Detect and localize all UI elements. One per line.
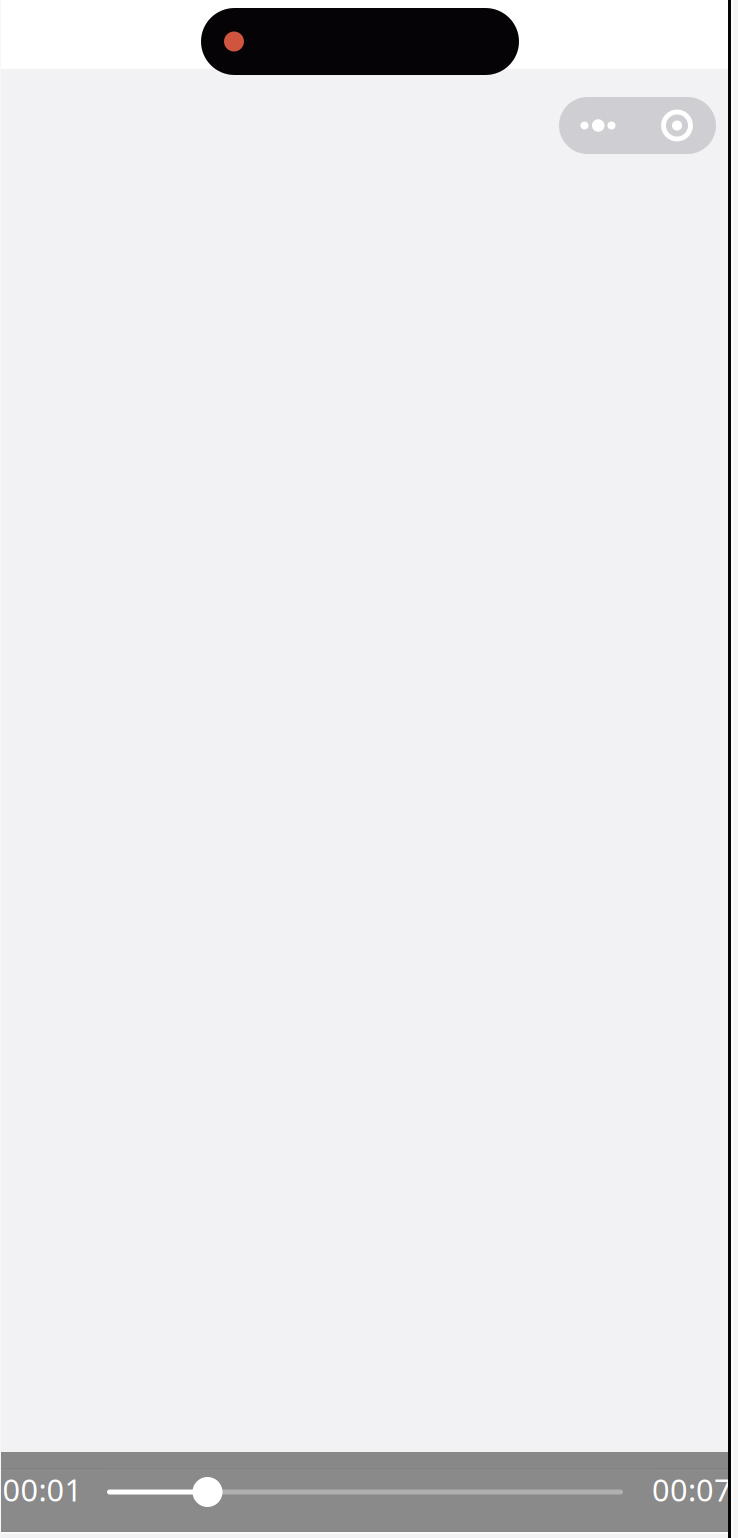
button[interactable]: Record <box>559 97 716 154</box>
button[interactable]: Scrubber <box>107 1467 653 1517</box>
staticText: 00:07 <box>652 1469 732 1510</box>
staticText: 00:01 <box>3 1469 83 1510</box>
